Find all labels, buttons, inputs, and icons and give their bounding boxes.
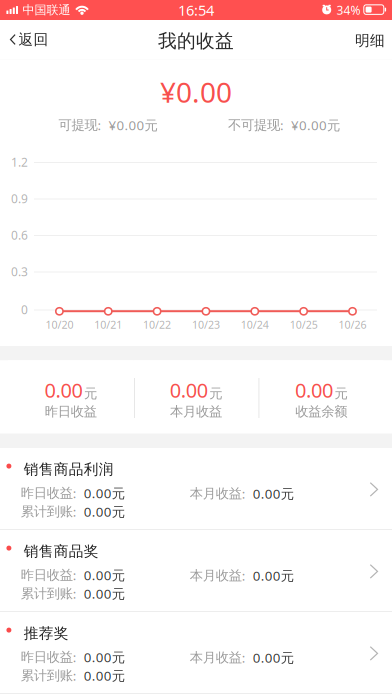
staticText: 昨日收益 (45, 403, 97, 420)
staticText: 0.00 (44, 377, 82, 403)
staticText: 明细 (355, 31, 385, 49)
staticText: 昨日收益 (21, 485, 73, 501)
staticText: 34% (336, 2, 360, 18)
staticText: 不可提现 (228, 117, 280, 133)
staticText: : (242, 485, 246, 502)
staticText: : (73, 484, 77, 502)
staticText: 本月收益 (170, 403, 222, 420)
staticText: 本月收益 (190, 649, 242, 666)
staticText: ¥0.00 (160, 73, 232, 111)
staticText: : (73, 667, 77, 684)
button[interactable]: 返回 (0, 20, 59, 59)
staticText: 0.00元 (84, 648, 125, 666)
staticText: 10/21 (94, 317, 122, 332)
staticText: 元 (84, 385, 97, 402)
staticText: 昨日收益 (21, 567, 73, 583)
staticText: : (73, 566, 77, 584)
staticText: 0 (21, 301, 28, 317)
staticText: 10/24 (241, 317, 269, 332)
staticText: : (97, 116, 101, 134)
staticText: 0.3 (11, 263, 28, 279)
staticText: : (73, 503, 77, 520)
staticText: 0.00 (170, 377, 208, 403)
staticText: 销售商品奖 (24, 542, 99, 560)
button[interactable]: 销售商品利润 (0, 448, 392, 530)
staticText: 10/20 (45, 317, 73, 332)
staticText: 0.00元 (84, 566, 125, 584)
staticText: ¥0.00元 (108, 116, 157, 134)
staticText: 0.00元 (253, 649, 294, 666)
staticText: 0.00元 (84, 667, 125, 684)
staticText: 本月收益 (190, 485, 242, 502)
staticText: : (242, 649, 246, 666)
staticText: 可提现 (58, 117, 97, 133)
staticText: : (242, 567, 246, 584)
staticText: 10/23 (192, 317, 220, 332)
staticText: 中国联通 (22, 3, 70, 17)
staticText: : (73, 648, 77, 666)
staticText: 0.00元 (84, 503, 125, 520)
staticText: 累计到账 (21, 585, 73, 602)
staticText: 元 (209, 385, 222, 402)
staticText: 推荐奖 (24, 624, 69, 642)
staticText: 10/22 (143, 317, 171, 332)
staticText: 0.00元 (253, 567, 294, 584)
staticText: 0.00元 (253, 485, 294, 502)
staticText: 1.2 (11, 154, 28, 170)
staticText: 0.00元 (84, 484, 125, 502)
staticText: 返回 (19, 30, 49, 48)
staticText: 0.6 (11, 227, 28, 243)
button[interactable]: 销售商品奖 (0, 530, 392, 612)
staticText: 元 (334, 385, 347, 402)
staticText: 我的收益 (158, 29, 234, 52)
staticText: ¥0.00元 (291, 116, 340, 134)
staticText: 0.00元 (84, 585, 125, 602)
staticText: 收益余额 (295, 403, 347, 420)
staticText: 10/26 (338, 317, 366, 332)
staticText: : (73, 585, 77, 602)
staticText: 销售商品利润 (24, 460, 114, 478)
staticText: 昨日收益 (21, 649, 73, 665)
button[interactable]: 推荐奖 (0, 612, 392, 694)
staticText: : (280, 116, 284, 134)
staticText: 累计到账 (21, 667, 73, 684)
staticText: 0.9 (11, 190, 28, 206)
staticText: 16:54 (178, 0, 214, 20)
button[interactable]: 明细 (343, 20, 392, 59)
staticText: 累计到账 (21, 503, 73, 520)
staticText: 0.00 (295, 377, 333, 403)
staticText: 10/25 (290, 317, 318, 332)
staticText: 本月收益 (190, 567, 242, 584)
